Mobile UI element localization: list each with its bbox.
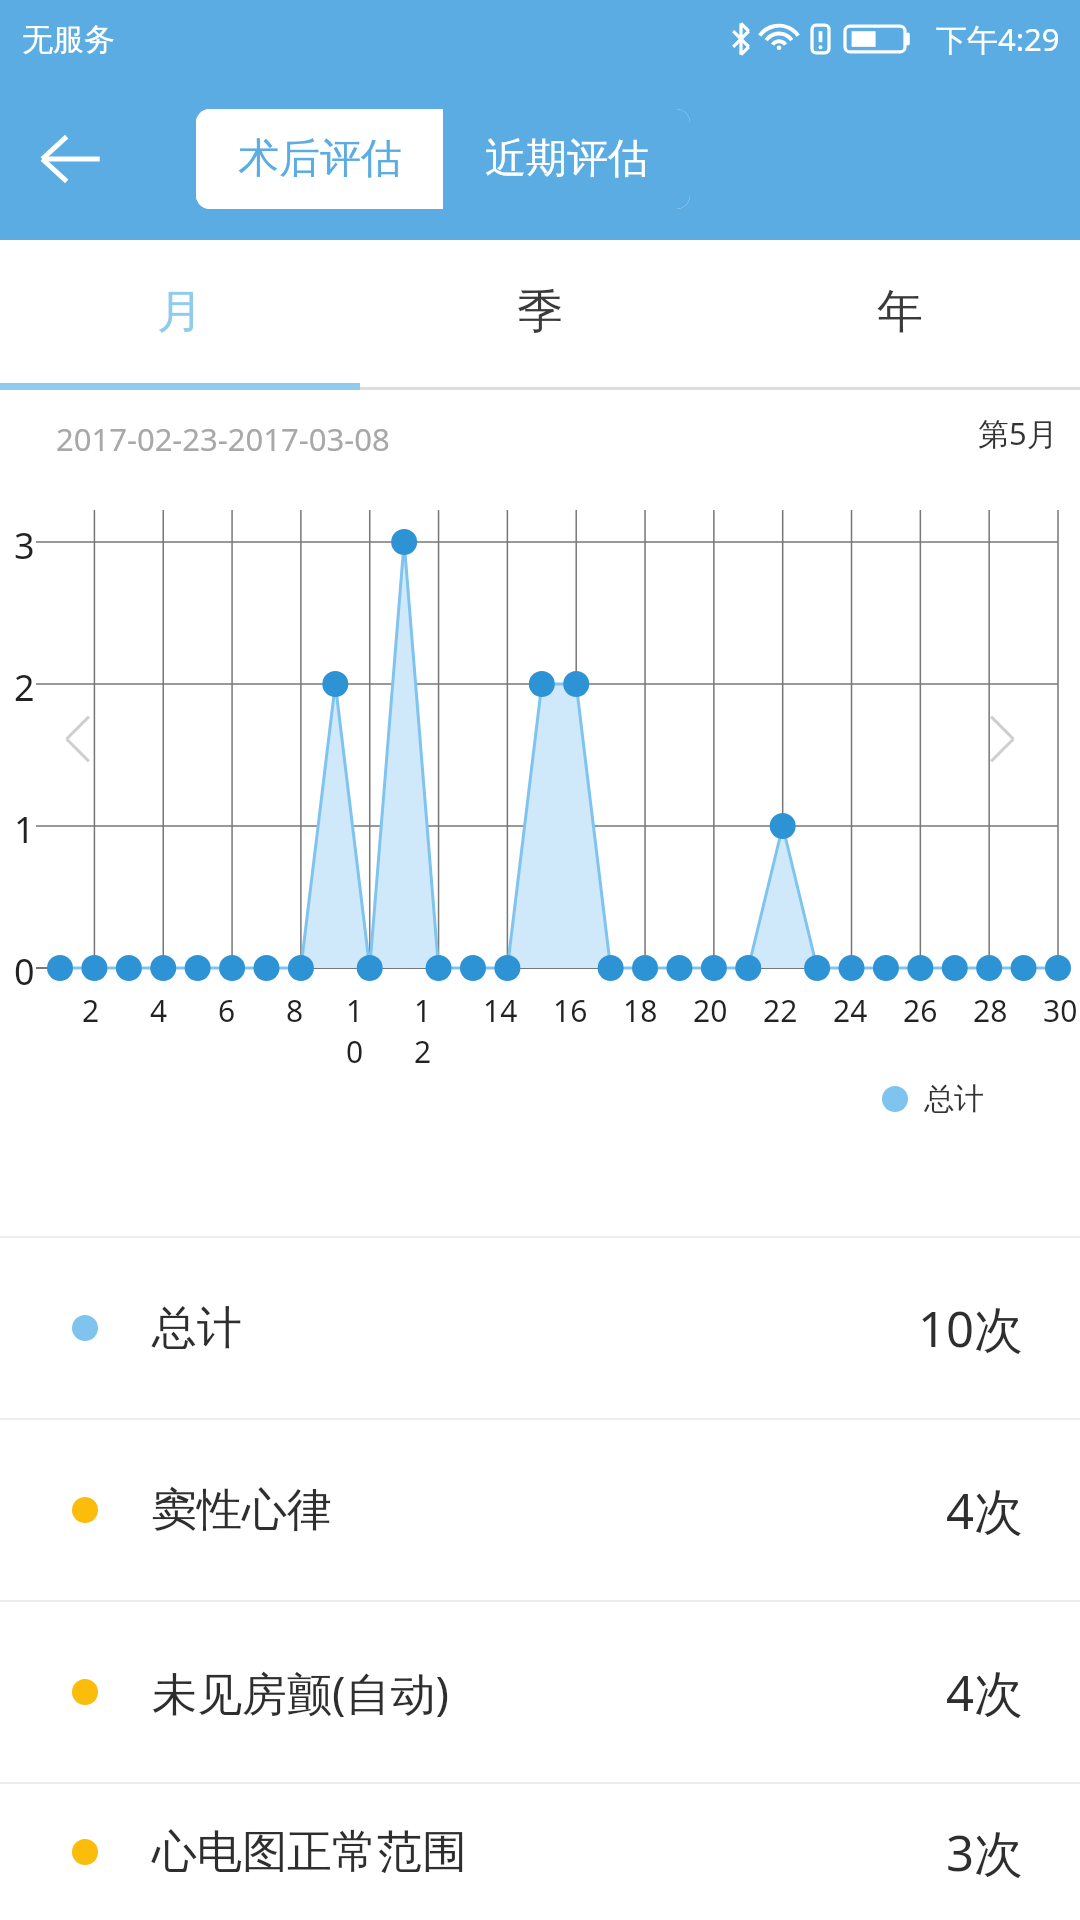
button[interactable]: 季	[360, 240, 720, 384]
staticText: 下午4:29	[936, 18, 1060, 60]
staticText: 12	[414, 990, 448, 1072]
button[interactable]: Next period	[956, 694, 1046, 784]
button[interactable]: 总计	[0, 1238, 1080, 1418]
staticText: 18	[623, 990, 658, 1031]
button[interactable]: 术后评估	[196, 109, 443, 209]
button[interactable]: 月	[0, 240, 360, 384]
staticText: 3	[14, 521, 35, 570]
button[interactable]: 近期评估	[443, 109, 690, 209]
staticText: 2017-02-23-2017-03-08	[56, 418, 390, 460]
staticText: 月	[157, 283, 203, 341]
button[interactable]: 窦性心律	[0, 1420, 1080, 1600]
staticText: 年	[877, 283, 923, 341]
staticText: 4次	[946, 1477, 1024, 1544]
button[interactable]: Back	[0, 89, 140, 229]
staticText: 未见房颤(自动)	[152, 1662, 450, 1723]
staticText: 2	[14, 663, 35, 712]
button[interactable]: 心电图正常范围	[0, 1784, 1080, 1920]
staticText: 6	[218, 990, 236, 1031]
staticText: 无服务	[22, 20, 115, 59]
staticText: 10	[346, 990, 380, 1072]
staticText: 术后评估	[238, 133, 402, 185]
staticText: 1	[14, 805, 35, 854]
staticText: 2	[82, 990, 100, 1031]
staticText: 总计	[924, 1080, 984, 1118]
staticText: 26	[903, 990, 938, 1031]
staticText: 16	[553, 990, 588, 1031]
staticText: 季	[517, 283, 563, 341]
button[interactable]: 年	[720, 240, 1080, 384]
staticText: 22	[763, 990, 798, 1031]
button[interactable]: 未见房颤(自动)	[0, 1602, 1080, 1782]
staticText: 近期评估	[485, 133, 649, 185]
staticText: 10次	[918, 1295, 1024, 1362]
staticText: 0	[14, 947, 35, 996]
staticText: 4次	[946, 1659, 1024, 1726]
staticText: 3次	[946, 1819, 1024, 1886]
staticText: 8	[286, 990, 304, 1031]
staticText: 20	[693, 990, 728, 1031]
staticText: 14	[483, 990, 518, 1031]
staticText: 4	[150, 990, 168, 1031]
staticText: 30	[1043, 990, 1078, 1031]
staticText: 24	[833, 990, 868, 1031]
staticText: 第5月	[978, 412, 1058, 454]
staticText: 心电图正常范围	[152, 1824, 467, 1881]
staticText: 总计	[152, 1300, 242, 1357]
button[interactable]: Previous period	[34, 694, 124, 784]
staticText: 28	[973, 990, 1008, 1031]
staticText: 窦性心律	[152, 1482, 332, 1539]
